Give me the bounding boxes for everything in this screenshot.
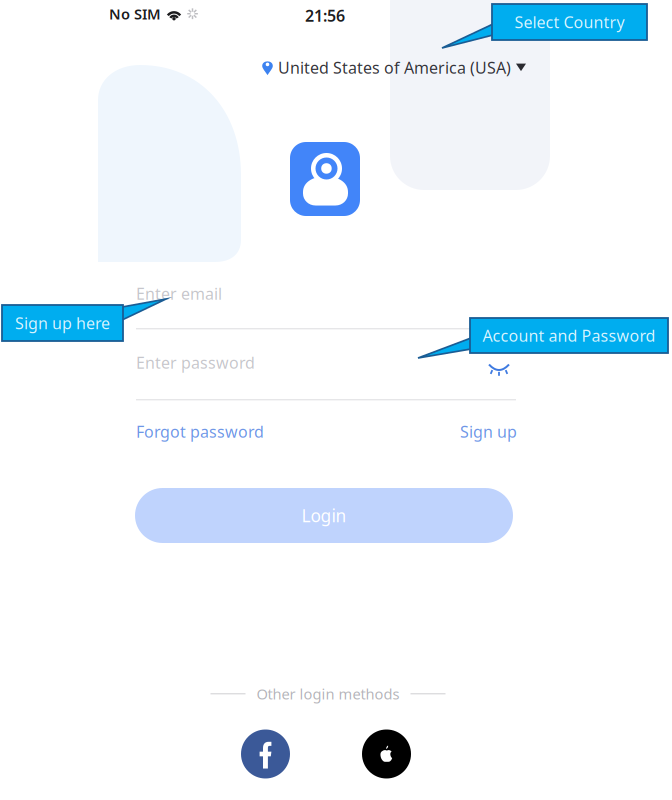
staticText: United States of America (USA) (278, 57, 511, 78)
staticText: Select Country (514, 11, 624, 33)
staticText: Enter email (136, 283, 222, 304)
button[interactable]: Show password (484, 358, 514, 382)
staticText: Sign up here (15, 312, 110, 334)
staticText: Forgot password (136, 421, 264, 442)
staticText: Sign up (460, 421, 517, 442)
staticText: No SIM (109, 4, 161, 23)
button[interactable]: Sign up (460, 421, 517, 442)
button[interactable]: Login (135, 488, 513, 543)
button[interactable]: Forgot password (136, 421, 264, 442)
staticText: Login (301, 504, 346, 527)
staticText: Other login methods (256, 684, 399, 703)
staticText: 21:56 (305, 5, 345, 26)
staticText: Enter password (136, 352, 255, 373)
button[interactable]: Sign in with Facebook (241, 729, 290, 779)
staticText: Account and Password (482, 325, 655, 346)
button[interactable]: United States of America (USA) (262, 57, 526, 78)
button[interactable]: Sign in with Apple (362, 729, 411, 779)
